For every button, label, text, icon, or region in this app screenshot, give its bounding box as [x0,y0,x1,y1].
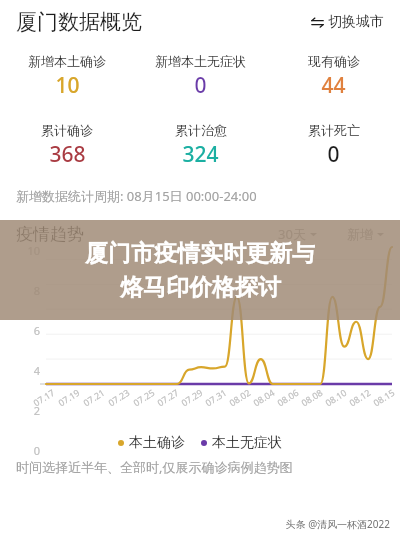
staticText: 07.23 [106,386,132,408]
staticText: 08.10 [323,386,349,408]
staticText: 本土无症状 [212,434,282,452]
staticText: 累计治愈 [175,122,227,138]
staticText: 厦门数据概览 [16,9,142,35]
staticText: 新增 [347,226,373,242]
staticText: 新增本土确诊 [28,53,106,69]
button[interactable]: 本土确诊 [118,434,185,452]
staticText: 07.21 [81,386,107,408]
staticText: 08.08 [299,386,325,408]
staticText: 0 [327,140,340,169]
staticText: 368 [49,140,86,169]
staticText: 324 [182,140,219,169]
staticText: 08.06 [275,386,301,408]
staticText: 现有确诊 [308,53,360,69]
staticText: 08.15 [371,386,397,408]
staticText: 切换城市 [328,13,384,31]
staticText: 0 [194,71,207,100]
staticText: 07.17 [31,386,57,408]
staticText: 30天 [278,225,306,243]
staticText: 4 [0,363,40,378]
staticText: 10 [55,71,80,100]
staticText: 新增数据统计周期: 08月15日 00:00-24:00 [16,187,257,205]
staticText: 07.27 [155,386,181,408]
staticText: 07.31 [203,386,229,408]
staticText: 08.02 [227,386,253,408]
staticText: 07.19 [56,386,82,408]
staticText: 本土确诊 [129,434,185,452]
button[interactable]: 30天 [276,223,319,245]
staticText: 疫情趋势 [16,224,84,245]
staticText: 07.25 [131,386,157,408]
button[interactable]: Switch city [307,9,388,35]
staticText: 07.29 [179,386,205,408]
staticText: 新增本土无症状 [155,53,246,69]
button[interactable]: 本土无症状 [201,434,282,452]
staticText: 累计确诊 [41,122,93,138]
staticText: 时间选择近半年、全部时,仅展示确诊病例趋势图 [16,458,293,476]
other: Switch city [311,16,324,29]
staticText: 0 [0,443,40,458]
button[interactable]: 累计确诊 [0,122,134,169]
button[interactable]: 新增 [345,224,386,244]
staticText: 头条 @清风一杯酒2022 [285,517,390,531]
button[interactable]: 累计死亡 [267,122,400,169]
button[interactable]: 新增本土无症状 [134,53,267,100]
staticText: 08.12 [347,386,373,408]
staticText: 08.04 [251,386,277,408]
staticText: 累计死亡 [308,122,360,138]
staticText: 6 [0,323,40,338]
staticText: 2 [0,403,40,418]
button[interactable]: 新增本土确诊 [0,53,134,100]
button[interactable]: 现有确诊 [267,53,400,100]
staticText: 厦门市疫情实时更新与 [85,239,315,268]
button[interactable]: 累计治愈 [134,122,267,169]
staticText: 烙马印价格探讨 [120,273,281,302]
staticText: 44 [321,71,346,100]
